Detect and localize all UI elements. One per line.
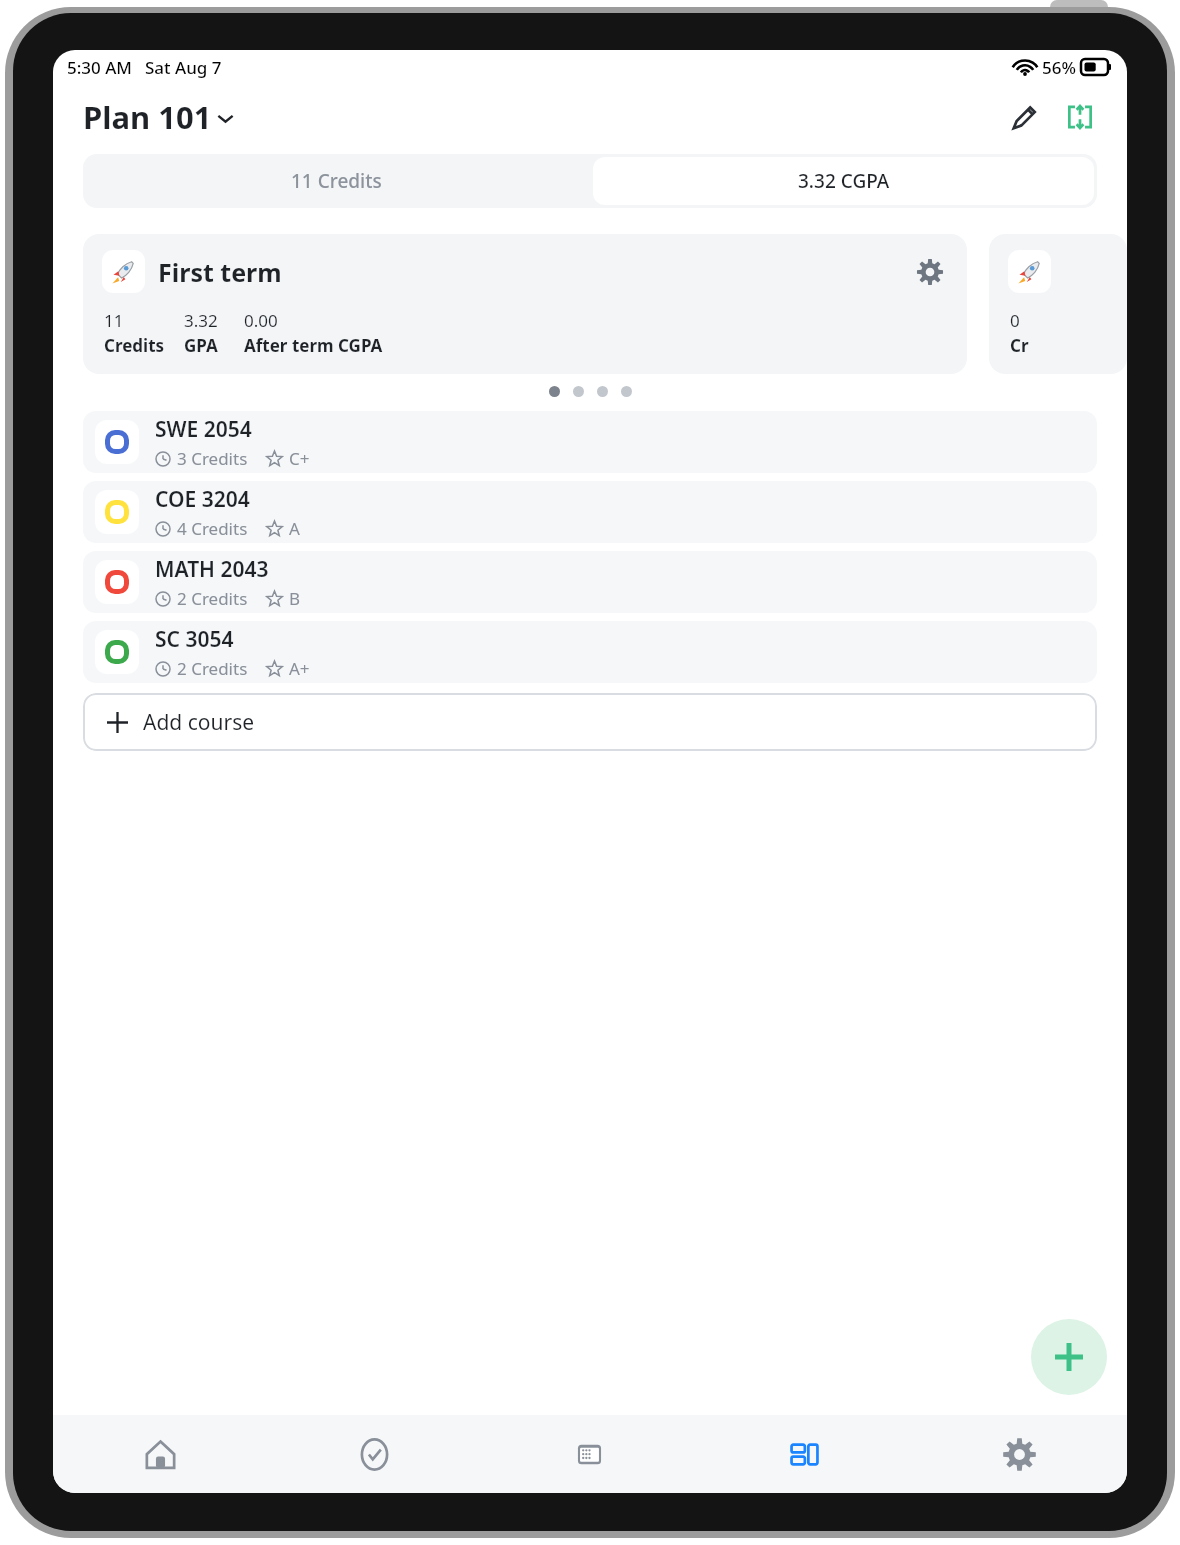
staticText: GPA bbox=[184, 334, 218, 357]
button[interactable]: SC 3054 bbox=[83, 621, 1097, 683]
staticText: 3.32 bbox=[184, 309, 218, 332]
button[interactable]: Settings bbox=[912, 1415, 1127, 1493]
staticText: A bbox=[289, 517, 300, 540]
staticText: 3 Credits bbox=[177, 447, 248, 470]
staticText: After term CGPA bbox=[244, 334, 383, 357]
button[interactable]: Home bbox=[53, 1415, 267, 1493]
staticText: 11 bbox=[104, 309, 124, 332]
staticText: First term bbox=[158, 255, 282, 289]
button[interactable]: 11 Credits bbox=[83, 154, 590, 208]
staticText: SWE 2054 bbox=[155, 415, 252, 444]
staticText: A+ bbox=[289, 657, 310, 680]
staticText: 4 Credits bbox=[177, 517, 248, 540]
button[interactable]: First term bbox=[83, 234, 967, 374]
staticText: C+ bbox=[289, 447, 310, 470]
button[interactable]: Add course bbox=[83, 693, 1097, 751]
button[interactable]: Plans bbox=[697, 1415, 912, 1493]
button[interactable]: Add bbox=[1031, 1319, 1107, 1395]
staticText: Add course bbox=[143, 708, 255, 737]
staticText: 2 Credits bbox=[177, 657, 248, 680]
staticText: 5:30 AM bbox=[67, 56, 132, 79]
button[interactable]: Calculator bbox=[482, 1415, 697, 1493]
staticText: 56% bbox=[1042, 56, 1076, 79]
button[interactable]: Edit bbox=[1001, 94, 1047, 140]
staticText: 0 bbox=[1010, 309, 1020, 332]
staticText: Plan 101 bbox=[83, 96, 212, 138]
button[interactable]: Expand all terms bbox=[1057, 94, 1103, 140]
button[interactable]: 3.32 CGPA bbox=[593, 157, 1094, 205]
staticText: Sat Aug 7 bbox=[145, 56, 222, 79]
staticText: Credits bbox=[104, 334, 165, 357]
button[interactable]: Term settings bbox=[909, 251, 951, 293]
button[interactable]: 0 bbox=[989, 234, 1127, 374]
button[interactable]: Tasks bbox=[267, 1415, 482, 1493]
button[interactable]: MATH 2043 bbox=[83, 551, 1097, 613]
staticText: COE 3204 bbox=[155, 485, 250, 514]
button[interactable]: Plan 101 bbox=[81, 96, 238, 138]
button[interactable]: COE 3204 bbox=[83, 481, 1097, 543]
staticText: 0.00 bbox=[244, 309, 278, 332]
staticText: 2 Credits bbox=[177, 587, 248, 610]
staticText: B bbox=[289, 587, 301, 610]
staticText: Cr bbox=[1010, 334, 1029, 357]
staticText: 11 Credits bbox=[291, 168, 382, 194]
staticText: SC 3054 bbox=[155, 625, 234, 654]
staticText: MATH 2043 bbox=[155, 555, 269, 584]
staticText: 3.32 CGPA bbox=[798, 168, 890, 194]
button[interactable]: SWE 2054 bbox=[83, 411, 1097, 473]
